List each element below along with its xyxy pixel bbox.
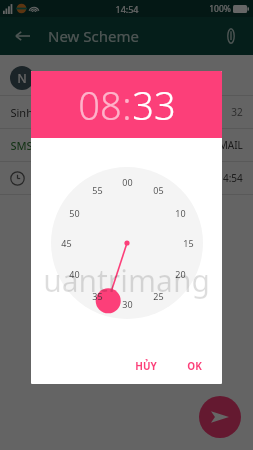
button[interactable]: HỦY (125, 354, 167, 378)
staticText: 00 (122, 176, 133, 188)
staticText: 25 (153, 290, 164, 302)
staticText: 100% (209, 3, 231, 15)
button[interactable]: 33 (132, 79, 176, 131)
staticText: N (17, 70, 27, 86)
staticText: OK (187, 359, 202, 373)
button[interactable]: OK (177, 354, 212, 378)
button[interactable]: SMS (0, 129, 253, 161)
staticText: uantrimang (43, 260, 210, 301)
button[interactable]: Attach (217, 22, 245, 50)
staticText: 35 (92, 290, 103, 302)
button[interactable]: 08 (78, 79, 122, 131)
staticText: 32 (231, 105, 243, 119)
staticText: Sinh nhật (10, 105, 60, 120)
staticText: : (122, 79, 132, 131)
staticText: New Scheme (48, 26, 139, 46)
staticText: 14:54 (217, 171, 243, 185)
staticText: 50 (69, 207, 80, 219)
staticText: 14:54 (115, 3, 139, 15)
button[interactable]: Sinh nhật (0, 96, 253, 128)
staticText: HỦY (135, 359, 157, 373)
staticText: 45 (61, 237, 72, 249)
staticText: 30 (122, 298, 133, 310)
staticText: 05 (153, 184, 164, 196)
staticText: 20 (175, 268, 186, 280)
button[interactable]: 14:54 (0, 162, 253, 194)
staticText: 10 (175, 207, 186, 219)
staticText: EMAIL (213, 138, 243, 152)
staticText: SMS (10, 138, 33, 153)
staticText: 15 (183, 237, 194, 249)
button[interactable]: Send (199, 396, 241, 438)
staticText: 40 (69, 268, 80, 280)
button[interactable]: Back (8, 22, 36, 50)
staticText: 55 (92, 184, 103, 196)
